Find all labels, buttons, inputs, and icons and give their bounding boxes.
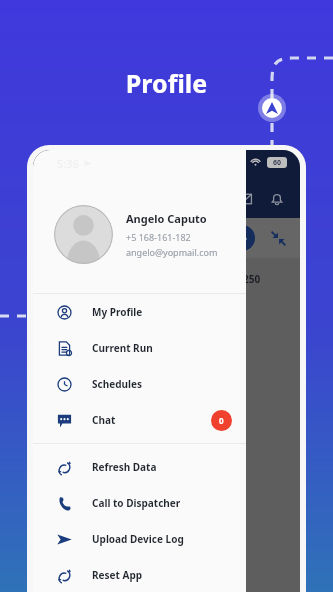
- button[interactable]: Schedules: [33, 366, 246, 402]
- staticText: Refresh Data: [92, 460, 157, 474]
- staticText: Profile: [0, 66, 333, 100]
- button[interactable]: Angelo Caputo: [33, 176, 246, 293]
- staticText: +5 168-161-182: [126, 231, 191, 243]
- button[interactable]: Reset App: [33, 557, 246, 592]
- button[interactable]: Upload Device Log: [33, 521, 246, 557]
- staticText: Upload Device Log: [92, 532, 184, 546]
- button[interactable]: My Profile: [33, 294, 246, 330]
- button[interactable]: Chat: [33, 402, 246, 438]
- staticText: My Profile: [92, 305, 143, 319]
- staticText: 60: [273, 158, 282, 168]
- staticText: Schedules: [92, 377, 142, 391]
- button[interactable]: Notifications: [266, 188, 288, 210]
- staticText: •••: [237, 232, 248, 244]
- staticText: Call to Dispatcher: [92, 496, 181, 510]
- staticText: Chat: [92, 413, 116, 427]
- button[interactable]: Messages: [234, 188, 256, 210]
- button[interactable]: Current Run: [33, 330, 246, 366]
- button[interactable]: Refresh Data: [33, 449, 246, 485]
- staticText: Angelo Caputo: [126, 211, 207, 226]
- staticText: Reset App: [92, 568, 143, 582]
- staticText: 0: [219, 415, 224, 426]
- staticText: Current Run: [92, 341, 153, 355]
- staticText: angelo@yopmail.com: [126, 246, 218, 258]
- staticText: 250: [243, 272, 261, 286]
- staticText: 5:36: [57, 156, 79, 171]
- button[interactable]: Call to Dispatcher: [33, 485, 246, 521]
